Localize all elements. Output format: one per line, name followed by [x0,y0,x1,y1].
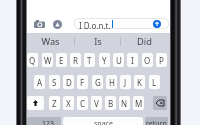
button[interactable]: P [156,53,167,67]
button[interactable]: G [92,75,103,89]
staticText: P [159,55,164,66]
button[interactable]: X [63,96,74,110]
button[interactable]: A [34,75,45,89]
button[interactable]: T [84,53,95,67]
button[interactable]: V [91,96,102,110]
staticText: A [37,77,43,88]
staticText: G [95,77,101,88]
staticText: J [124,77,127,88]
button[interactable]: E [56,53,67,67]
staticText: B [108,98,114,109]
button[interactable]: Camera [33,18,46,30]
staticText: W [44,55,52,66]
staticText: U [116,55,122,66]
button[interactable]: U [113,53,124,67]
button[interactable]: Y [99,53,110,67]
staticText: Z [52,98,57,109]
button[interactable]: return [145,117,168,125]
button[interactable]: M [133,96,144,110]
staticText: H [109,77,115,88]
button[interactable]: space [63,117,143,125]
staticText: V [94,98,99,109]
button[interactable]: K [134,75,145,89]
button[interactable]: W [42,53,53,67]
staticText: X [66,98,71,109]
staticText: D [66,77,72,88]
button[interactable]: 123 [27,117,61,125]
staticText: L [152,77,157,88]
button[interactable]: L [149,75,160,89]
staticText: Y [102,55,107,66]
button[interactable]: R [70,53,81,67]
button[interactable]: B [105,96,116,110]
button[interactable]: S [49,75,60,89]
staticText: F [80,77,85,88]
staticText: return [146,119,167,125]
staticText: O [144,55,151,66]
button[interactable]: Q [27,53,38,67]
staticText: Q [29,55,36,66]
button[interactable]: J [120,75,131,89]
staticText: T [87,55,92,66]
button[interactable]: O [142,53,153,67]
staticText: 123 [42,119,55,125]
staticText: Is [94,35,102,48]
button[interactable]: Z [49,96,60,110]
button[interactable]: App Store [53,18,62,30]
button[interactable]: I [127,53,138,67]
staticText: R [73,55,78,66]
button[interactable]: N [119,96,130,110]
button[interactable]: H [106,75,117,89]
button[interactable]: Is [74,34,121,49]
button[interactable]: Send [153,20,161,28]
button[interactable]: C [77,96,88,110]
button[interactable]: Backspace [153,96,167,110]
button[interactable]: F [77,75,88,89]
button[interactable]: Shift [27,96,44,110]
staticText: Did [137,35,152,48]
staticText: space [94,119,113,125]
button[interactable]: I D.o.n.t. [74,18,169,29]
staticText: S [52,77,57,88]
staticText: E [59,55,64,66]
button[interactable]: D [63,75,74,89]
staticText: K [137,77,142,88]
staticText: C [80,98,86,109]
staticText: M [135,98,143,109]
staticText: Was [41,35,60,48]
button[interactable]: Did [121,34,168,49]
staticText: N [121,98,128,109]
staticText: I D.o.n.t. [79,20,111,29]
staticText: I [131,55,134,66]
button[interactable]: Was [27,34,74,49]
